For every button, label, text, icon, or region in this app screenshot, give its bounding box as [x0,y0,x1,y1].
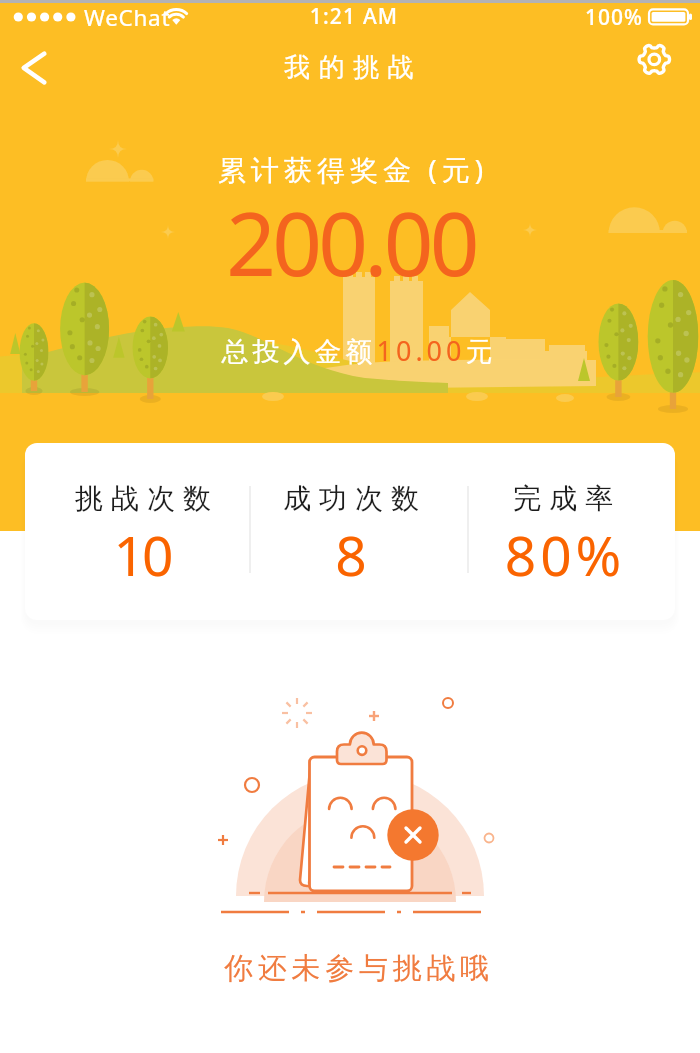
staticText: WeChat [84,2,171,33]
staticText: 累计获得奖金 (元) [3,150,700,188]
staticText: 80% [466,517,664,592]
staticText: 你还未参与挑战哦 [9,950,700,987]
staticText: 我的挑战 [3,51,700,84]
staticText: 100% [585,3,643,32]
button[interactable]: 成功次数 [252,443,450,620]
staticText: 成功次数 [256,481,454,516]
staticText: 完成率 [468,481,666,516]
staticText: 1:21 AM [4,2,700,31]
button[interactable]: 完成率 [464,443,662,620]
staticText: 10 [43,517,241,592]
staticText: 挑战次数 [48,481,246,516]
staticText: 总投入金额10.00元 [9,332,700,369]
button[interactable]: Settings [630,35,678,83]
button[interactable]: Back [6,42,62,94]
staticText: 200.00 [1,183,700,301]
staticText: 8 [252,517,450,592]
button[interactable]: 挑战次数 [44,443,242,620]
